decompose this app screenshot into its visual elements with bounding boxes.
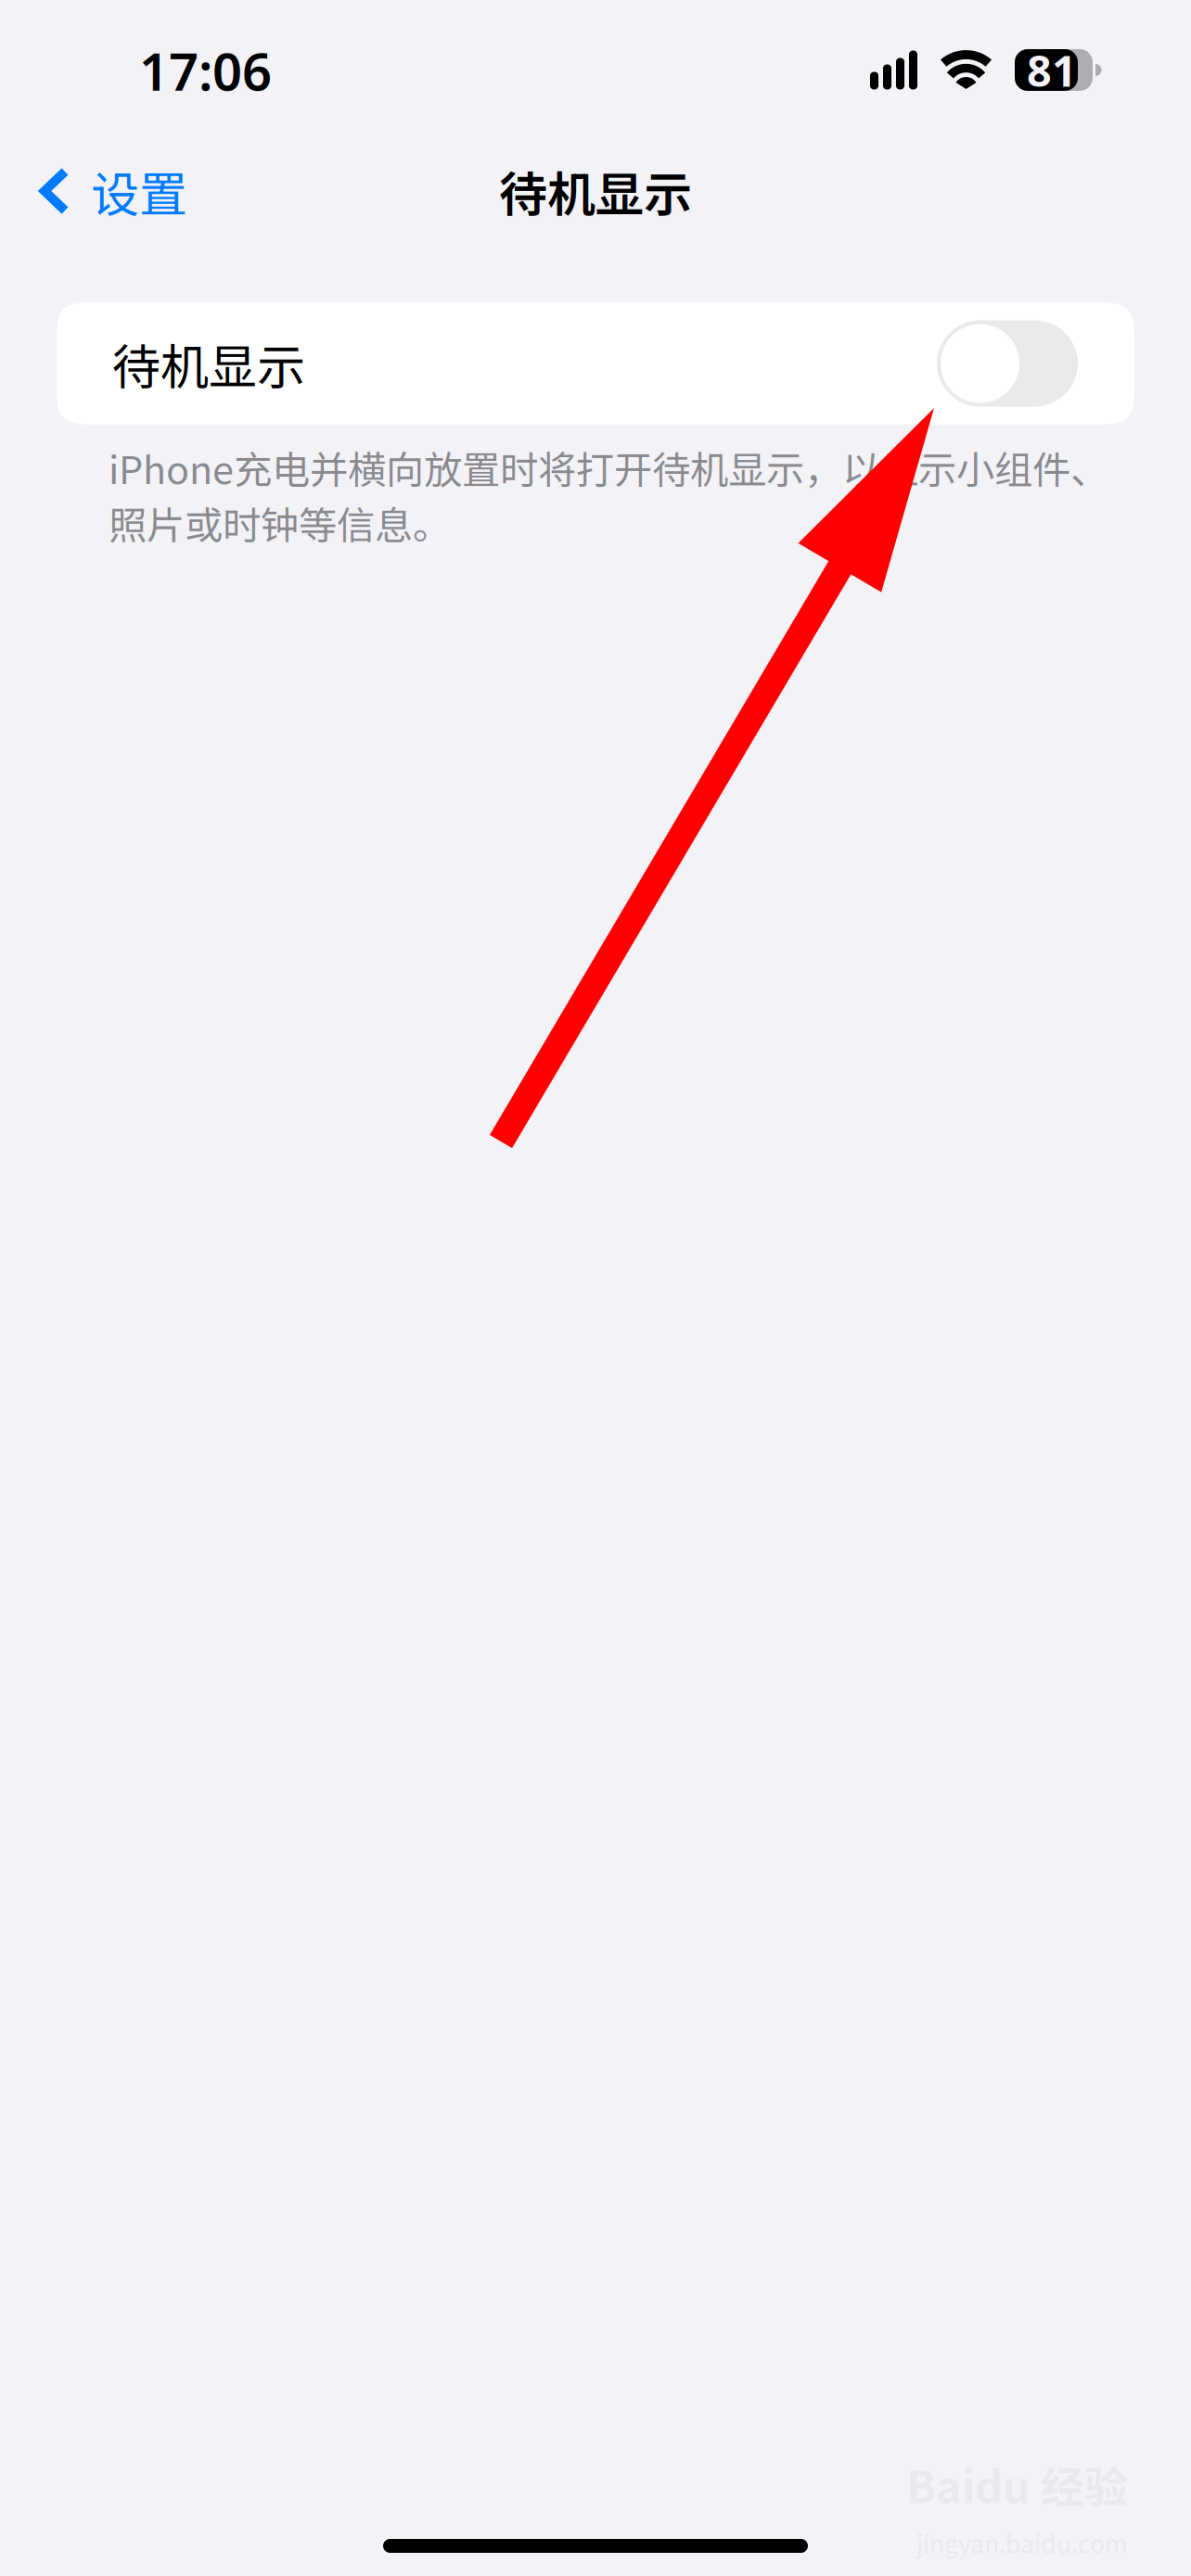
staticText: 待机显示 — [112, 329, 305, 398]
staticText: 设置 — [91, 156, 187, 226]
staticText: 81 — [1027, 41, 1077, 99]
button[interactable]: 待机显示 — [0, 302, 1191, 425]
staticText: jingyan.baidu.com — [916, 2525, 1128, 2560]
staticText: Baidu 经验 — [906, 2453, 1128, 2515]
button[interactable]: 设置 — [0, 145, 210, 237]
staticText: iPhone充电并横向放置时将打开待机显示，以显示小组件、照片或时钟等信息。 — [109, 440, 1108, 551]
staticText: 17:06 — [139, 36, 272, 105]
staticText: 待机显示 — [499, 156, 692, 226]
